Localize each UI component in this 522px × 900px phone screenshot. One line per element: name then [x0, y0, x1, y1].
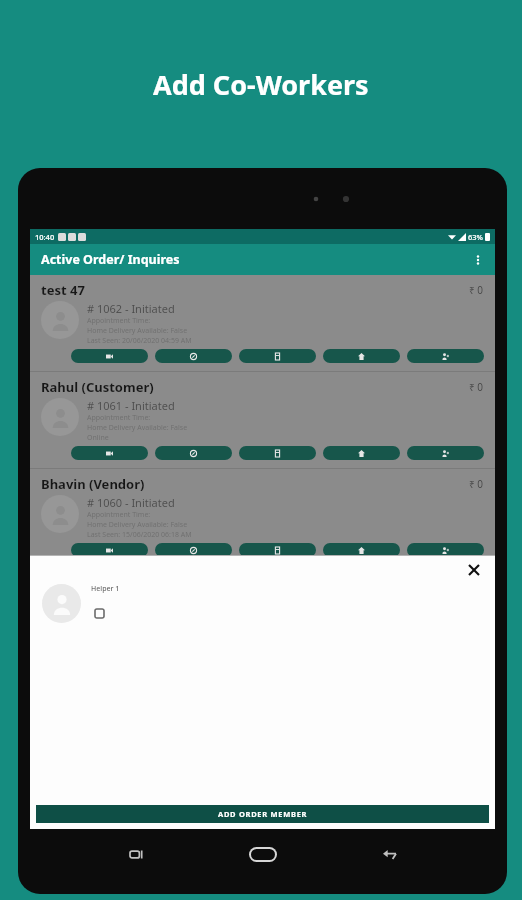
button[interactable]: Edit [155, 349, 232, 363]
button[interactable]: Invoice [239, 446, 316, 460]
button[interactable]: Home [323, 543, 400, 557]
button[interactable]: Home [323, 349, 400, 363]
button[interactable]: Add member [407, 446, 484, 460]
staticText: Online [87, 433, 109, 443]
button[interactable]: Close [463, 559, 485, 581]
staticText: test 47 [41, 281, 85, 299]
staticText: Bhavin (Vendor) [41, 475, 145, 493]
button[interactable]: Invoice [239, 349, 316, 363]
staticText: Add Co-Workers [153, 66, 369, 103]
button[interactable]: Video call [71, 543, 148, 557]
button[interactable]: ADD ORDER MEMBER [36, 805, 489, 823]
staticText: # 1061 - Initiated [87, 398, 175, 413]
button[interactable]: Home [242, 833, 284, 875]
button[interactable]: Invoice [239, 543, 316, 557]
button[interactable]: Select Helper 1 [91, 605, 107, 621]
staticText: Last Seen: 15/06/2020 06:18 AM [87, 530, 192, 540]
button[interactable]: Home [323, 446, 400, 460]
staticText: ₹ 0 [469, 283, 484, 297]
button[interactable]: Add member [407, 543, 484, 557]
button[interactable]: Edit [155, 446, 232, 460]
staticText: ADD ORDER MEMBER [218, 809, 308, 819]
staticText: Appointment Time: [87, 510, 151, 520]
staticText: ₹ 0 [469, 380, 484, 394]
button[interactable]: More options [466, 248, 490, 272]
staticText: Rahul (Customer) [41, 378, 154, 396]
staticText: # 1060 - Initiated [87, 495, 175, 510]
button[interactable]: Recents [118, 836, 154, 872]
button[interactable]: Rahul (Customer) [30, 372, 495, 468]
staticText: 63% [468, 232, 483, 242]
button[interactable]: Edit [155, 543, 232, 557]
button[interactable]: test 47 [30, 275, 495, 371]
button[interactable]: Bhavin (Vendor) [30, 469, 495, 565]
button[interactable]: Video call [71, 349, 148, 363]
button[interactable]: Video call [71, 446, 148, 460]
staticText: Last Seen: 20/06/2020 04:59 AM [87, 336, 192, 346]
staticText: Appointment Time: [87, 316, 151, 326]
staticText: Appointment Time: [87, 413, 151, 423]
staticText: ₹ 0 [469, 477, 484, 491]
staticText: 10:40 [35, 232, 55, 242]
staticText: Home Delivery Available: False [87, 423, 188, 433]
staticText: Home Delivery Available: False [87, 326, 188, 336]
staticText: Home Delivery Available: False [87, 520, 188, 530]
button[interactable]: Back [371, 836, 407, 872]
staticText: # 1062 - Initiated [87, 301, 175, 316]
staticText: Active Order/ Inquires [41, 251, 180, 268]
button[interactable]: Add member [407, 349, 484, 363]
staticText: Helper 1 [91, 584, 120, 594]
